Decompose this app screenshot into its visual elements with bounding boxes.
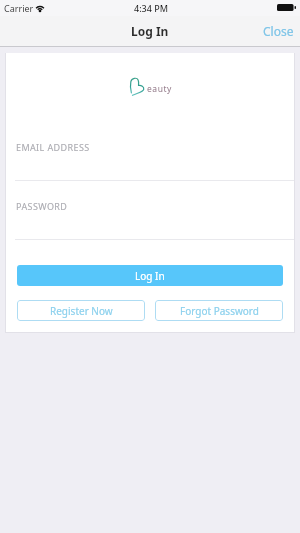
staticText: PASSWORD	[16, 200, 68, 212]
staticText: Register Now	[50, 304, 113, 318]
button[interactable]: Register Now	[17, 300, 145, 321]
staticText: 4:34 PM	[134, 2, 168, 14]
button[interactable]: EMAIL ADDRESS	[6, 127, 294, 180]
staticText: Log In	[135, 269, 165, 283]
button[interactable]: Forgot Password	[155, 300, 283, 321]
staticText: Carrier	[4, 2, 34, 14]
staticText: Forgot Password	[180, 304, 259, 318]
staticText: EMAIL ADDRESS	[16, 141, 90, 153]
button[interactable]: Log In	[17, 265, 283, 286]
button[interactable]: PASSWORD	[6, 186, 294, 239]
staticText: Close	[263, 23, 294, 39]
staticText: Log In	[131, 23, 169, 39]
button[interactable]: Close	[254, 19, 300, 45]
staticText: eauty	[147, 83, 172, 95]
